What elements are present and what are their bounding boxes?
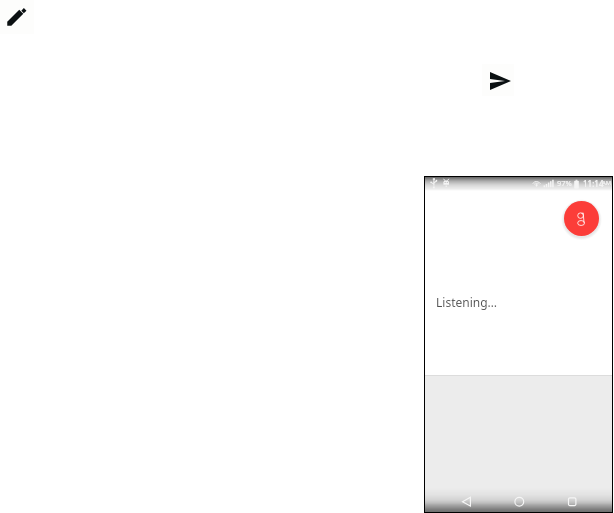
button[interactable]: Send	[482, 64, 514, 96]
button[interactable]: Google voice search	[564, 201, 599, 236]
staticText: 97%	[557, 178, 572, 188]
staticText: Listening…	[436, 294, 498, 310]
staticText: 11:14	[583, 178, 604, 189]
button[interactable]: Edit	[0, 0, 34, 34]
staticText: AM	[602, 179, 612, 187]
